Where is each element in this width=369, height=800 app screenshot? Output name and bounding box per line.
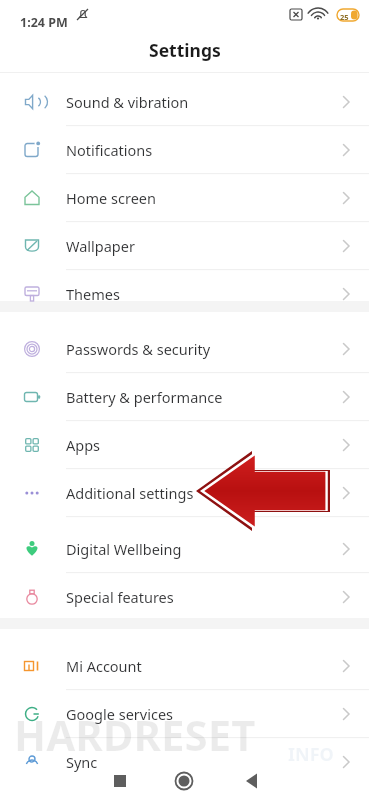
- staticText: Digital Wellbeing: [66, 539, 182, 559]
- staticText: HARDRESET: [14, 706, 256, 763]
- staticText: Special features: [66, 587, 174, 607]
- button[interactable]: Notifications: [0, 126, 369, 174]
- button[interactable]: Passwords & security: [0, 325, 369, 373]
- staticText: Mi Account: [66, 656, 142, 676]
- staticText: Wallpaper: [66, 236, 135, 256]
- staticText: 1:24 PM: [20, 14, 68, 31]
- button[interactable]: Home: [160, 762, 208, 800]
- button[interactable]: Mi Account: [0, 642, 369, 690]
- button[interactable]: Google services: [0, 690, 369, 738]
- staticText: Battery & performance: [66, 387, 223, 407]
- button[interactable]: Recents: [96, 762, 144, 800]
- staticText: Home screen: [66, 188, 156, 208]
- staticText: INFO: [288, 742, 334, 767]
- staticText: Themes: [66, 284, 120, 304]
- staticText: Settings: [149, 38, 221, 62]
- button[interactable]: Sync: [0, 738, 369, 786]
- staticText: Passwords & security: [66, 339, 211, 359]
- staticText: Apps: [66, 435, 101, 455]
- staticText: Sound & vibration: [66, 92, 189, 112]
- button[interactable]: Home screen: [0, 174, 369, 222]
- button[interactable]: Special features: [0, 573, 369, 621]
- button[interactable]: Themes: [0, 270, 369, 318]
- button[interactable]: Additional settings: [0, 469, 369, 517]
- staticText: Notifications: [66, 140, 153, 160]
- button[interactable]: Apps: [0, 421, 369, 469]
- button[interactable]: Back: [228, 762, 276, 800]
- button[interactable]: Battery & performance: [0, 373, 369, 421]
- button[interactable]: Digital Wellbeing: [0, 525, 369, 573]
- staticText: Sync: [66, 752, 98, 772]
- button[interactable]: Sound & vibration: [0, 78, 369, 126]
- staticText: 25: [340, 12, 349, 22]
- staticText: Additional settings: [66, 483, 194, 503]
- button[interactable]: Wallpaper: [0, 222, 369, 270]
- staticText: Google services: [66, 704, 174, 724]
